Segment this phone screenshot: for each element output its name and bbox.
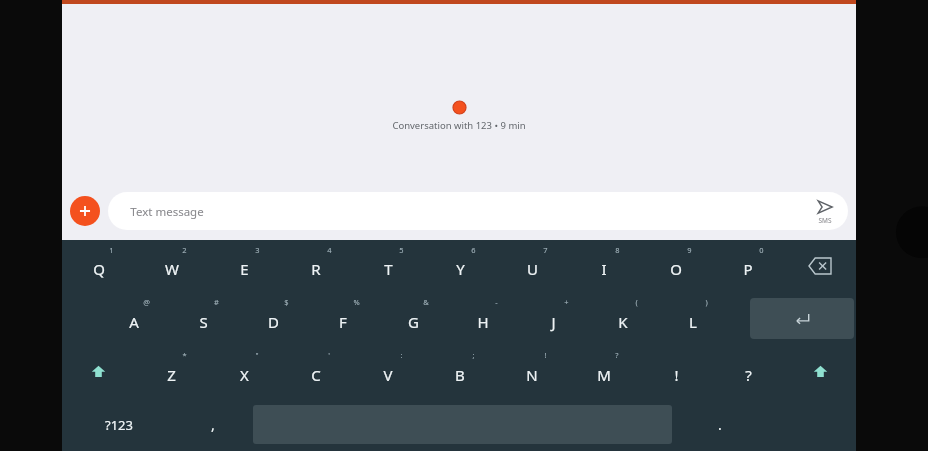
staticText: - — [495, 297, 498, 307]
staticText: M — [597, 365, 611, 385]
button[interactable]: 1 — [62, 240, 135, 292]
staticText: ) — [705, 297, 708, 307]
button[interactable]: ' — [280, 345, 352, 398]
staticText: SMS — [818, 216, 832, 225]
staticText: U — [527, 259, 538, 279]
staticText: " — [255, 350, 259, 360]
button[interactable]: 6 — [424, 240, 496, 292]
staticText: K — [618, 312, 628, 332]
staticText: E — [240, 259, 249, 279]
button[interactable]: $ — [238, 292, 308, 345]
staticText: $ — [284, 297, 289, 307]
staticText: N — [526, 365, 538, 385]
button[interactable]: & — [378, 292, 448, 345]
button[interactable]: % — [308, 292, 378, 345]
staticText: O — [670, 259, 682, 279]
staticText: Q — [93, 259, 105, 279]
staticText: : — [400, 350, 403, 360]
staticText: W — [165, 259, 179, 279]
button[interactable]: Add attachment — [70, 196, 100, 226]
staticText: 6 — [471, 245, 476, 255]
button[interactable]: . — [674, 398, 765, 451]
staticText: 5 — [399, 245, 404, 255]
staticText: G — [408, 312, 419, 332]
staticText: Y — [456, 259, 465, 279]
staticText: 4 — [327, 245, 332, 255]
button[interactable]: ( — [588, 292, 658, 345]
staticText: Conversation with 123 • 9 min — [392, 119, 526, 132]
button[interactable]: ! — [640, 345, 712, 398]
staticText: B — [455, 365, 465, 385]
button[interactable]: Enter — [750, 298, 854, 339]
staticText: ? — [615, 350, 619, 360]
button[interactable]: ? — [712, 345, 784, 398]
button[interactable]: 8 — [568, 240, 640, 292]
staticText: * — [182, 350, 187, 360]
staticText: F — [339, 312, 347, 332]
button[interactable]: ! — [496, 345, 568, 398]
button[interactable]: Shift — [62, 345, 135, 398]
button[interactable]: " — [208, 345, 280, 398]
staticText: R — [311, 259, 321, 279]
staticText: , — [211, 415, 215, 434]
button[interactable]: ; — [424, 345, 496, 398]
button[interactable]: 0 — [712, 240, 784, 292]
staticText: . — [718, 415, 722, 434]
staticText: ; — [472, 350, 475, 360]
button[interactable]: - — [448, 292, 518, 345]
staticText: J — [551, 312, 556, 332]
button[interactable]: 4 — [280, 240, 352, 292]
staticText: Text message — [130, 204, 204, 220]
button[interactable]: , — [175, 398, 251, 451]
staticText: ' — [328, 350, 330, 360]
staticText: % — [353, 297, 360, 307]
staticText: ! — [544, 350, 547, 360]
staticText: C — [311, 365, 321, 385]
staticText: A — [129, 312, 139, 332]
staticText: ? — [745, 365, 752, 385]
button[interactable]: Text message — [108, 192, 848, 230]
button[interactable]: 9 — [640, 240, 712, 292]
staticText: & — [423, 297, 429, 307]
staticText: L — [689, 312, 697, 332]
button[interactable]: ?123 — [62, 398, 175, 451]
button[interactable]: ? — [568, 345, 640, 398]
staticText: 2 — [182, 245, 187, 255]
button[interactable]: 7 — [496, 240, 568, 292]
staticText: X — [240, 365, 249, 385]
button[interactable]: # — [168, 292, 238, 345]
staticText: @ — [143, 297, 150, 307]
button[interactable]: 3 — [208, 240, 280, 292]
staticText: # — [214, 297, 219, 307]
staticText: D — [268, 312, 279, 332]
staticText: 1 — [109, 245, 114, 255]
staticText: Z — [167, 365, 176, 385]
staticText: ( — [635, 297, 638, 307]
staticText: V — [383, 365, 393, 385]
staticText: 9 — [687, 245, 692, 255]
staticText: H — [477, 312, 489, 332]
staticText: S — [199, 312, 208, 332]
staticText: I — [601, 259, 607, 279]
button[interactable]: * — [135, 345, 208, 398]
button[interactable]: Send SMS — [816, 198, 834, 225]
button[interactable]: 5 — [352, 240, 424, 292]
button[interactable]: Backspace — [784, 240, 856, 292]
staticText: 8 — [615, 245, 620, 255]
staticText: ! — [674, 365, 679, 385]
staticText: T — [384, 259, 393, 279]
staticText: 7 — [543, 245, 548, 255]
button[interactable]: : — [352, 345, 424, 398]
button[interactable]: ) — [658, 292, 728, 345]
staticText: + — [564, 297, 569, 307]
button[interactable]: Shift — [784, 345, 856, 398]
staticText: 3 — [255, 245, 260, 255]
button[interactable]: @ — [99, 292, 168, 345]
staticText: 0 — [759, 245, 764, 255]
staticText: P — [743, 259, 753, 279]
button[interactable]: + — [518, 292, 588, 345]
button[interactable]: 2 — [135, 240, 208, 292]
staticText: ?123 — [105, 416, 133, 434]
